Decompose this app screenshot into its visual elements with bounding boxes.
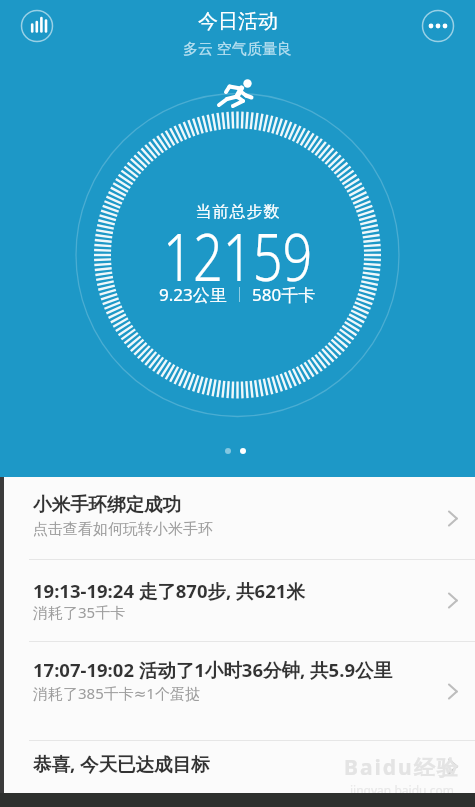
staticText: 9.23公里: [159, 283, 227, 306]
staticText: 多云 空气质量良: [183, 38, 292, 58]
button[interactable]: [422, 10, 454, 42]
button[interactable]: 小米手环绑定成功: [0, 477, 475, 559]
button[interactable]: 17:07-19:02 活动了1小时36分钟, 共5.9公里: [0, 641, 475, 741]
staticText: 恭喜, 今天已达成目标: [33, 751, 210, 776]
button[interactable]: 19:13-19:24 走了870步, 共621米: [0, 559, 475, 641]
staticText: Baidu经验: [344, 753, 460, 782]
staticText: 12159: [163, 209, 313, 300]
staticText: 580千卡: [252, 283, 316, 306]
staticText: 当前总步数: [195, 202, 280, 222]
button[interactable]: [21, 10, 53, 42]
staticText: 小米手环绑定成功: [33, 493, 181, 516]
staticText: 今日活动: [198, 9, 278, 34]
staticText: 消耗了35千卡: [33, 602, 126, 622]
staticText: 点击查看如何玩转小米手环: [33, 520, 213, 539]
staticText: 17:07-19:02 活动了1小时36分钟, 共5.9公里: [33, 657, 392, 682]
button[interactable]: 恭喜, 今天已达成目标: [0, 741, 475, 792]
staticText: jingyan.baidu.com: [350, 782, 454, 798]
staticText: 消耗了385千卡≈1个蛋挞: [33, 683, 200, 703]
staticText: 19:13-19:24 走了870步, 共621米: [33, 578, 305, 603]
